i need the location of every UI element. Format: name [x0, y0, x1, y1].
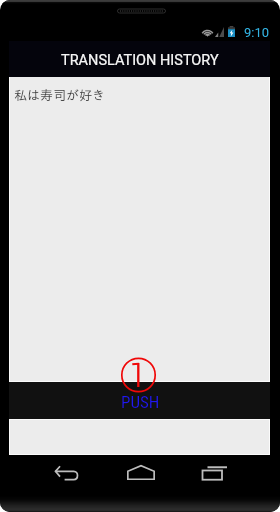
staticText: PUSH	[121, 392, 160, 412]
staticText: 9:10	[244, 25, 270, 40]
button[interactable]: Recent apps	[198, 458, 230, 488]
staticText: 私は寿司が好き	[14, 89, 105, 102]
button[interactable]: Home	[125, 457, 157, 487]
button[interactable]: Back	[51, 458, 83, 488]
staticText: TRANSLATION HISTORY	[61, 52, 219, 69]
button[interactable]: PUSH	[9, 382, 270, 419]
